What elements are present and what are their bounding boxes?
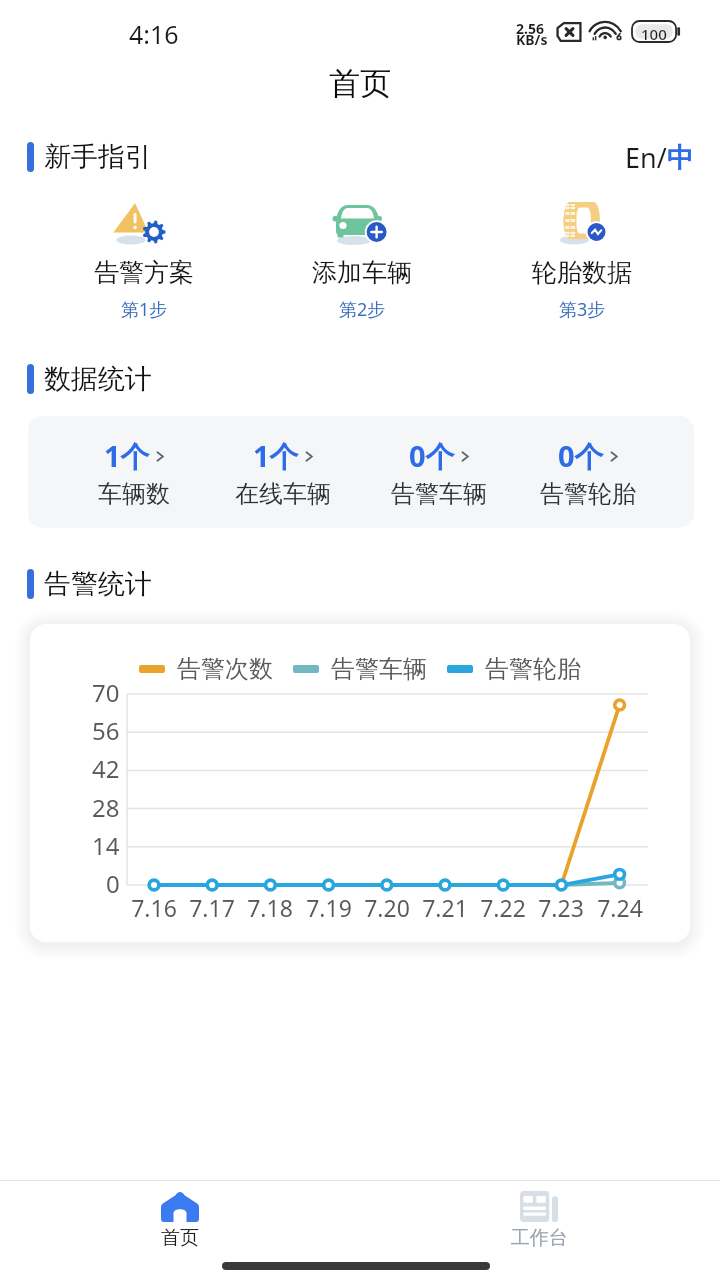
staticText: 第2步 — [339, 297, 386, 322]
staticText: En/ — [625, 139, 667, 176]
button[interactable]: En/ — [625, 139, 720, 176]
staticText: 告警轮胎 — [485, 654, 581, 684]
staticText: 0个 — [558, 436, 604, 476]
staticText: 56 — [92, 714, 120, 747]
staticText: 7.23 — [538, 892, 584, 923]
staticText: 7.18 — [247, 892, 293, 923]
staticText: 70 — [92, 676, 120, 709]
staticText: 7.22 — [480, 892, 526, 923]
button[interactable]: 添加车辆 — [277, 190, 447, 324]
staticText: 告警次数 — [177, 654, 273, 684]
staticText: 7.21 — [422, 892, 468, 923]
staticText: 7.17 — [189, 892, 235, 923]
staticText: 轮胎数据 — [532, 257, 632, 288]
staticText: 车辆数 — [98, 479, 170, 509]
staticText: 数据统计 — [44, 362, 152, 396]
staticText: 告警轮胎 — [540, 479, 636, 509]
button[interactable]: 告警方案 — [59, 190, 229, 324]
staticText: 0个 — [409, 436, 455, 476]
staticText: 告警统计 — [44, 567, 152, 601]
staticText: 28 — [92, 791, 120, 824]
staticText: 14 — [92, 829, 120, 862]
staticText: 42 — [92, 752, 120, 785]
staticText: 100 — [641, 24, 667, 44]
staticText: 7.19 — [306, 892, 352, 923]
staticText: 在线车辆 — [235, 479, 331, 509]
staticText: 中 — [667, 141, 694, 175]
button[interactable]: 1个 — [218, 434, 348, 511]
staticText: 新手指引 — [44, 140, 152, 174]
staticText: 7.16 — [131, 892, 177, 923]
staticText: 首页 — [161, 1226, 199, 1250]
staticText: 首页 — [329, 64, 391, 103]
button[interactable]: 首页 — [120, 1188, 240, 1253]
staticText: 第1步 — [121, 297, 168, 322]
staticText: 第3步 — [559, 297, 606, 322]
staticText: 告警车辆 — [391, 479, 487, 509]
button[interactable]: 0个 — [523, 434, 653, 511]
button[interactable]: 轮胎数据 — [497, 190, 667, 324]
staticText: KB/s — [516, 30, 548, 49]
staticText: 告警方案 — [94, 257, 194, 288]
staticText: 1个 — [253, 436, 299, 476]
staticText: 4:16 — [129, 17, 179, 51]
staticText: 1个 — [104, 436, 150, 476]
staticText: 7.24 — [597, 892, 643, 923]
staticText: 添加车辆 — [312, 257, 412, 288]
button[interactable]: 0个 — [374, 434, 504, 511]
button[interactable]: 1个 — [69, 434, 199, 511]
staticText: 0 — [106, 867, 120, 900]
staticText: 2.56 — [516, 19, 544, 38]
staticText: 7.20 — [364, 892, 410, 923]
button[interactable]: 工作台 — [479, 1188, 599, 1253]
staticText: 告警车辆 — [331, 654, 427, 684]
staticText: 工作台 — [511, 1226, 568, 1250]
